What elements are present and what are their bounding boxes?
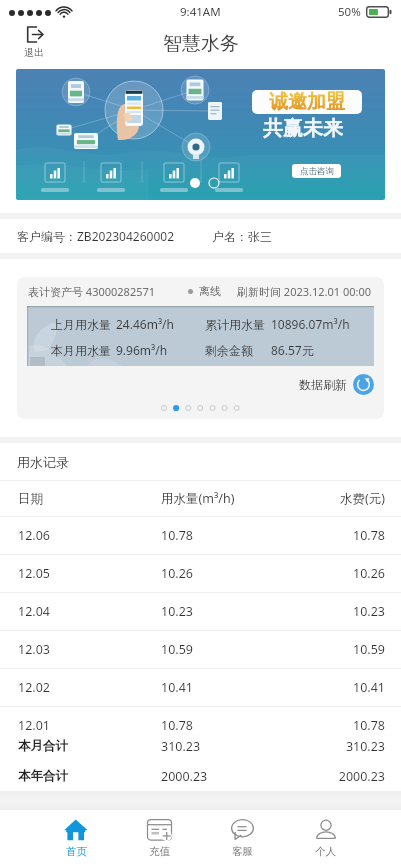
staticText: 10.26 xyxy=(307,565,385,582)
staticText: 86.57元 xyxy=(271,342,314,358)
staticText: 12.01 xyxy=(18,717,161,734)
staticText: 12.02 xyxy=(18,679,161,696)
staticText: 日期 xyxy=(18,491,161,507)
staticText: 9:41AM xyxy=(180,4,221,20)
staticText: 10.26 xyxy=(161,565,307,582)
staticText: 用水记录 xyxy=(17,454,69,470)
staticText: 310.23 xyxy=(161,738,307,755)
staticText: 9.96m³/h xyxy=(116,342,168,358)
button[interactable]: 点击咨询 xyxy=(292,164,341,178)
staticText: 个人 xyxy=(315,845,336,858)
staticText: 表计资产号 43000282571 xyxy=(28,284,156,299)
button[interactable]: 诚邀加盟 xyxy=(16,69,385,200)
staticText: 本年合计 xyxy=(18,768,161,784)
staticText: 充值 xyxy=(149,845,170,858)
staticText: 累计用水量 xyxy=(205,317,265,332)
staticText: 12.05 xyxy=(18,565,161,582)
button[interactable]: 12.02 xyxy=(0,668,401,706)
staticText: 共赢未来 xyxy=(263,116,343,140)
staticText: 户名：张三 xyxy=(212,229,272,244)
staticText: 10.23 xyxy=(161,603,307,620)
staticText: 10.59 xyxy=(307,641,385,658)
staticText: 客户编号：ZB202304260002 xyxy=(17,228,175,244)
staticText: 10.41 xyxy=(161,679,307,696)
staticText: 50% xyxy=(338,4,361,20)
staticText: 诚邀加盟 xyxy=(269,90,345,114)
button[interactable]: 首页 xyxy=(34,810,118,866)
staticText: 10896.07m³/h xyxy=(271,316,350,332)
button[interactable]: 12.03 xyxy=(0,630,401,668)
staticText: 310.23 xyxy=(307,738,385,755)
staticText: 离线 xyxy=(199,284,221,298)
staticText: 10.78 xyxy=(161,527,307,544)
staticText: 本月用水量 xyxy=(51,343,111,358)
button[interactable]: 数据刷新 xyxy=(299,372,374,397)
staticText: 10.78 xyxy=(307,527,385,544)
staticText: 刷新时间 2023.12.01 00:00 xyxy=(237,284,372,299)
staticText: 10.78 xyxy=(161,717,307,734)
staticText: 上月用水量 xyxy=(51,317,111,332)
staticText: 退出 xyxy=(24,46,44,59)
staticText: 10.23 xyxy=(307,603,385,620)
staticText: 水费(元) xyxy=(307,490,385,507)
staticText: 智慧水务 xyxy=(163,32,239,56)
button[interactable]: 12.04 xyxy=(0,592,401,630)
staticText: 用水量(m³/h) xyxy=(161,490,307,507)
staticText: 点击咨询 xyxy=(300,166,334,177)
staticText: 10.41 xyxy=(307,679,385,696)
button[interactable]: 个人 xyxy=(284,810,367,866)
button[interactable]: 12.05 xyxy=(0,554,401,592)
staticText: 首页 xyxy=(66,845,87,858)
button[interactable]: 充值 xyxy=(118,810,201,866)
staticText: 12.06 xyxy=(18,527,161,544)
staticText: 剩余金额 xyxy=(205,343,253,358)
staticText: 24.46m³/h xyxy=(116,316,174,332)
button[interactable]: 12.06 xyxy=(0,516,401,554)
staticText: 数据刷新 xyxy=(299,377,347,392)
button[interactable]: 客服 xyxy=(201,810,284,866)
button[interactable]: 12.01 xyxy=(0,706,401,744)
staticText: 本月合计 xyxy=(18,738,161,754)
staticText: 10.78 xyxy=(307,717,385,734)
staticText: 2000.23 xyxy=(161,768,307,785)
other: 数据刷新 xyxy=(353,374,374,395)
button[interactable]: 退出 xyxy=(20,26,48,59)
staticText: 客服 xyxy=(232,845,253,858)
staticText: 2000.23 xyxy=(307,768,385,785)
staticText: 12.03 xyxy=(18,641,161,658)
staticText: 12.04 xyxy=(18,603,161,620)
staticText: 10.59 xyxy=(161,641,307,658)
